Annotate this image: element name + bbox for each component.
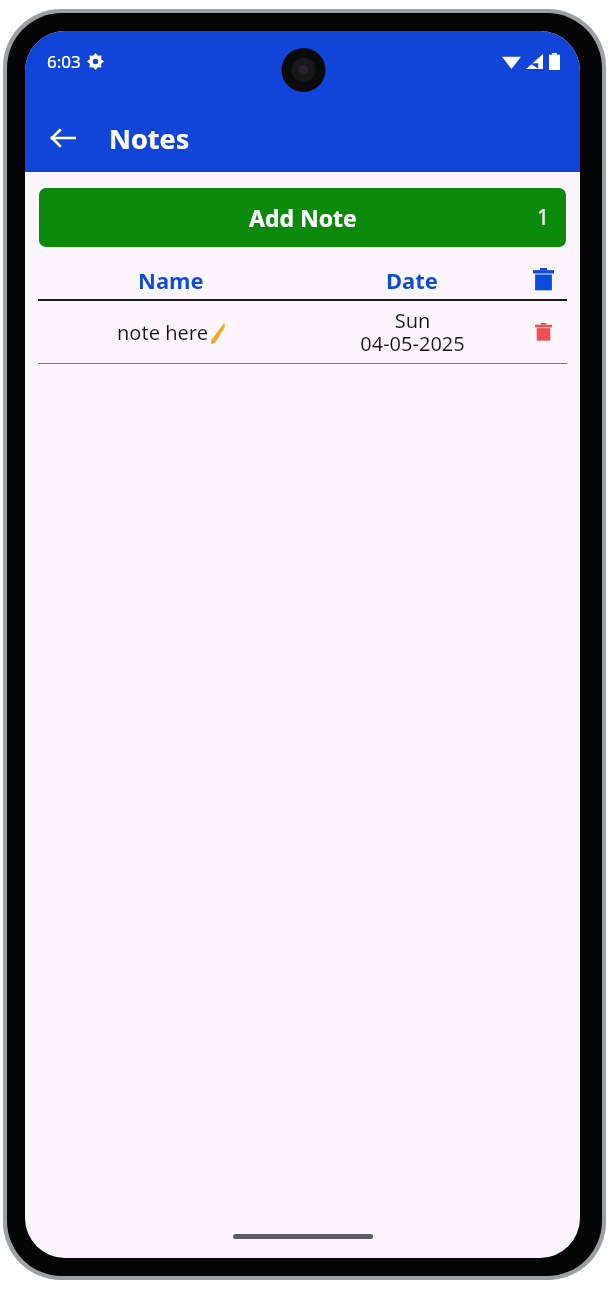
button[interactable]: Back — [38, 113, 88, 163]
staticText: Notes — [109, 120, 190, 157]
staticText: Sun 04-05-2025 — [360, 307, 465, 357]
button[interactable]: Delete note — [520, 301, 567, 363]
button[interactable]: Add Note — [39, 188, 566, 247]
staticText: Add Note — [249, 202, 357, 233]
button[interactable]: Date — [386, 265, 438, 295]
button[interactable]: Delete all notes — [520, 261, 567, 299]
staticText: note here — [117, 319, 208, 346]
button[interactable]: note here — [38, 301, 567, 363]
staticText: 1 — [537, 203, 550, 232]
button[interactable]: Name — [138, 265, 204, 295]
staticText: 6:03 — [47, 50, 81, 73]
